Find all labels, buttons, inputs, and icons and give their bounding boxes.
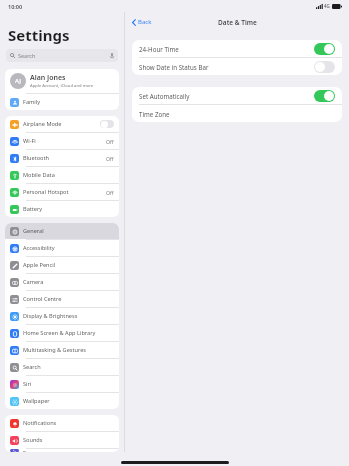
button[interactable]: 24-Hour Time [314,43,335,55]
button[interactable]: Sounds [5,432,119,448]
staticText: Airplane Mode [23,120,62,128]
button[interactable]: Airplane Mode [5,116,119,132]
staticText: Family [23,98,41,106]
staticText: Apple Account, iCloud and more [30,83,94,89]
staticText: Home Screen & App Library [23,329,96,337]
staticText: Notifications [23,419,57,427]
button[interactable]: Multitasking & Gestures [5,342,119,358]
button[interactable]: Wallpaper [5,393,119,409]
staticText: Search [18,52,36,59]
staticText: Battery [23,205,43,213]
staticText: Bluetooth [23,154,49,162]
button[interactable]: Camera [5,274,119,290]
staticText: Off [106,138,114,145]
staticText: Multitasking & Gestures [23,346,87,354]
button[interactable]: Family [5,94,119,110]
staticText: Camera [23,278,44,286]
button[interactable]: Control Centre [5,291,119,307]
staticText: General [23,227,44,235]
staticText: 4G [324,3,330,9]
staticText: 24-Hour Time [139,45,179,53]
button[interactable]: Toggle [100,120,114,128]
button[interactable]: Siri [5,376,119,392]
staticText: Wi-Fi [23,137,36,145]
button[interactable]: Bluetooth [5,150,119,166]
staticText: AJ [15,77,21,85]
staticText: Search [23,363,41,371]
staticText: Siri [23,380,32,388]
button[interactable]: AJ [5,69,119,93]
button[interactable]: Search [6,49,118,62]
staticText: Accessibility [23,244,55,252]
button[interactable]: General [5,223,119,239]
button[interactable]: Display & Brightness [5,308,119,324]
button[interactable]: Time Zone [132,105,342,122]
button[interactable]: Battery [5,201,119,217]
staticText: Date & Time [218,18,257,27]
button[interactable]: Wi-Fi [5,133,119,149]
staticText: Alan Jones [30,73,66,83]
button[interactable]: Set Automatically [132,87,342,104]
staticText: Personal Hotspot [23,188,69,196]
staticText: Off [106,155,114,162]
button[interactable]: Show Date in Status Bar [132,58,342,75]
staticText: Control Centre [23,295,62,303]
staticText: Sounds [23,436,43,444]
staticText: Show Date in Status Bar [139,63,209,71]
staticText: Apple Pencil [23,261,56,269]
staticText: Back [138,18,152,26]
staticText: Focus [23,449,39,452]
button[interactable]: 24-Hour Time [132,40,342,57]
staticText: Mobile Data [23,171,55,179]
button[interactable]: Personal Hotspot [5,184,119,200]
staticText: 10:00 [8,3,23,10]
button[interactable]: Home Screen & App Library [5,325,119,341]
button[interactable]: Focus [5,449,119,452]
button[interactable]: Search [5,359,119,375]
button[interactable]: Apple Pencil [5,257,119,273]
button[interactable]: Show Date in Status Bar [314,61,335,73]
button[interactable]: Set Automatically [314,90,335,102]
staticText: Time Zone [139,110,170,118]
staticText: Off [106,189,114,196]
staticText: Wallpaper [23,397,50,405]
button[interactable]: Notifications [5,415,119,431]
staticText: Settings [8,25,70,45]
staticText: Display & Brightness [23,312,78,320]
button[interactable]: Mobile Data [5,167,119,183]
button[interactable]: Accessibility [5,240,119,256]
button[interactable]: Back [130,16,154,28]
staticText: Set Automatically [139,92,190,100]
